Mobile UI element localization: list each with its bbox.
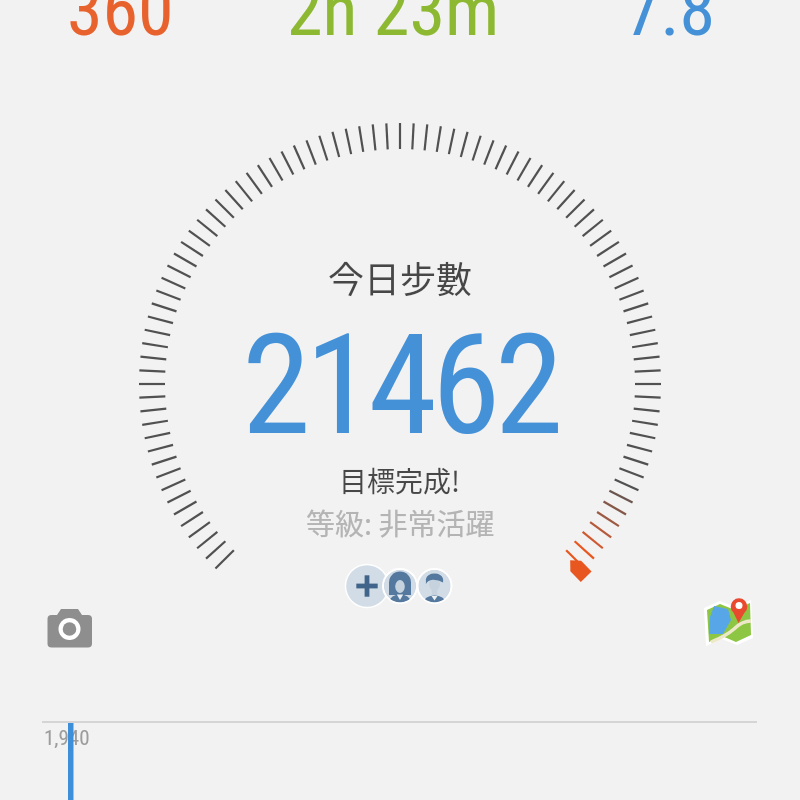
button[interactable] [380,562,420,602]
staticText: 21462 [242,304,559,467]
staticText: 1,940 [44,726,90,751]
staticText: 7.8 [625,0,716,52]
staticText: 2h 23m [287,0,500,52]
button[interactable] [700,592,758,650]
staticText: 今日步數 [328,251,473,303]
button[interactable] [343,562,391,610]
staticText: 360 [67,0,174,52]
staticText: 目標完成! [339,460,461,501]
button[interactable] [40,598,98,656]
staticText: 等級: 非常活躍 [306,501,495,543]
button[interactable] [413,562,453,602]
